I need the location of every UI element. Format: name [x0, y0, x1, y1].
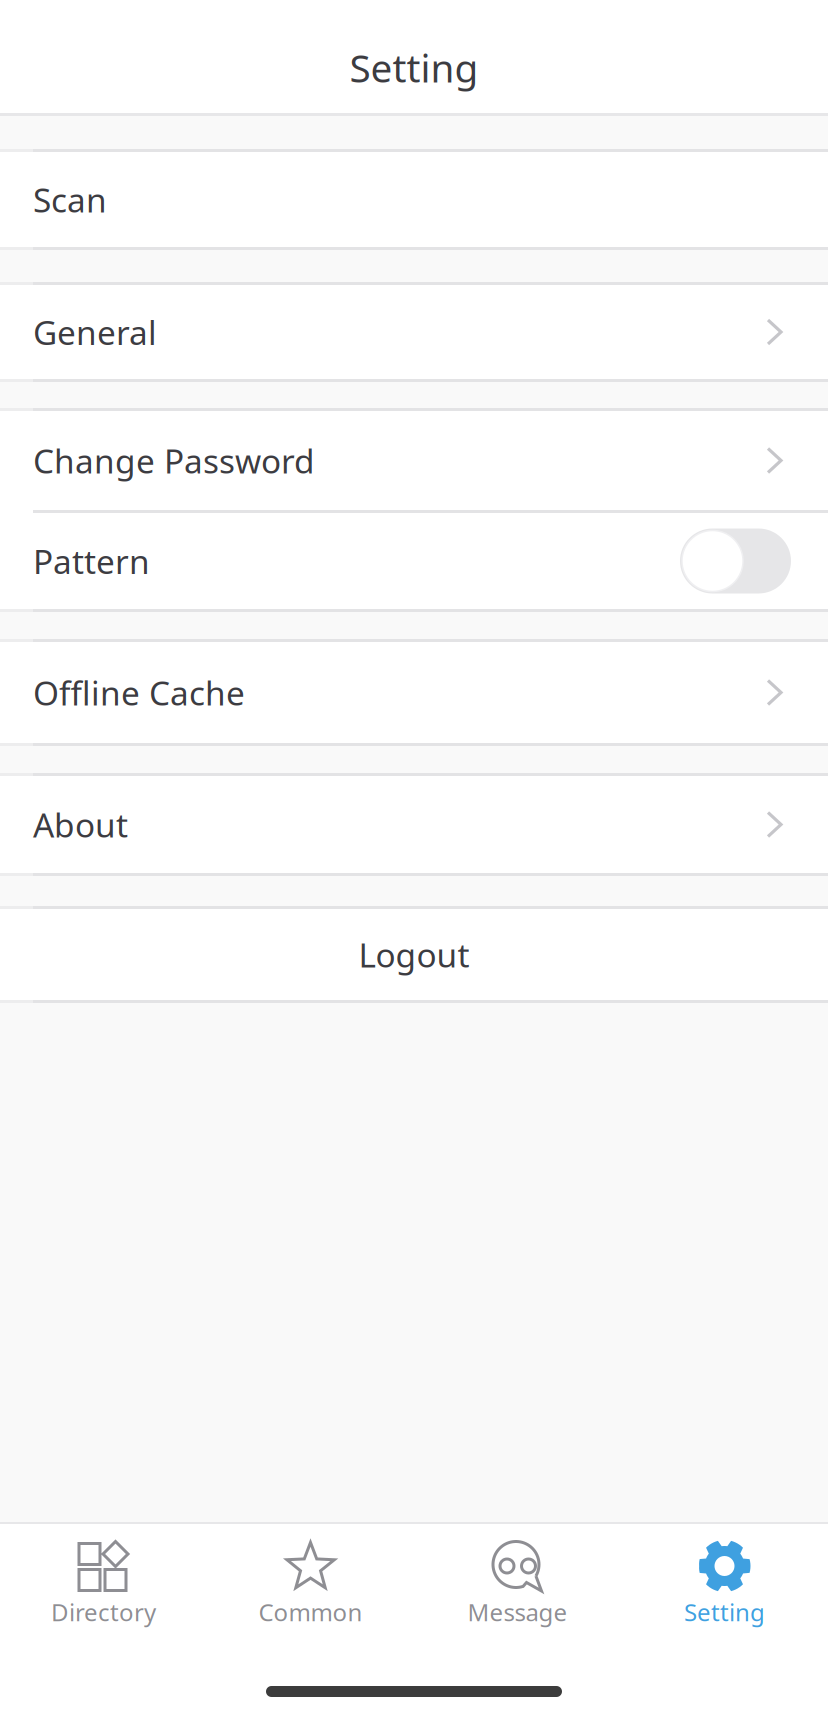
button[interactable]: Offline Cache [0, 642, 828, 743]
staticText: Setting [684, 1596, 765, 1628]
staticText: Logout [358, 932, 469, 977]
button[interactable]: Message [414, 1540, 621, 1686]
staticText: Scan [33, 177, 107, 222]
button[interactable]: Logout [0, 909, 828, 1000]
button[interactable]: Scan [0, 152, 828, 247]
staticText: Setting [349, 42, 478, 93]
button[interactable]: About [0, 776, 828, 873]
button[interactable]: Common [207, 1540, 414, 1686]
button[interactable]: Pattern [0, 513, 828, 609]
staticText: Common [258, 1596, 362, 1628]
staticText: Change Password [33, 438, 315, 483]
staticText: Message [467, 1596, 567, 1628]
button[interactable]: Change Password [0, 411, 828, 510]
button[interactable]: General [0, 285, 828, 379]
staticText: Directory [51, 1596, 156, 1628]
staticText: Offline Cache [33, 670, 245, 715]
staticText: Pattern [33, 539, 150, 583]
button[interactable]: Directory [0, 1540, 207, 1686]
staticText: About [33, 802, 128, 847]
staticText: General [33, 310, 157, 354]
button[interactable]: Setting [621, 1540, 828, 1686]
